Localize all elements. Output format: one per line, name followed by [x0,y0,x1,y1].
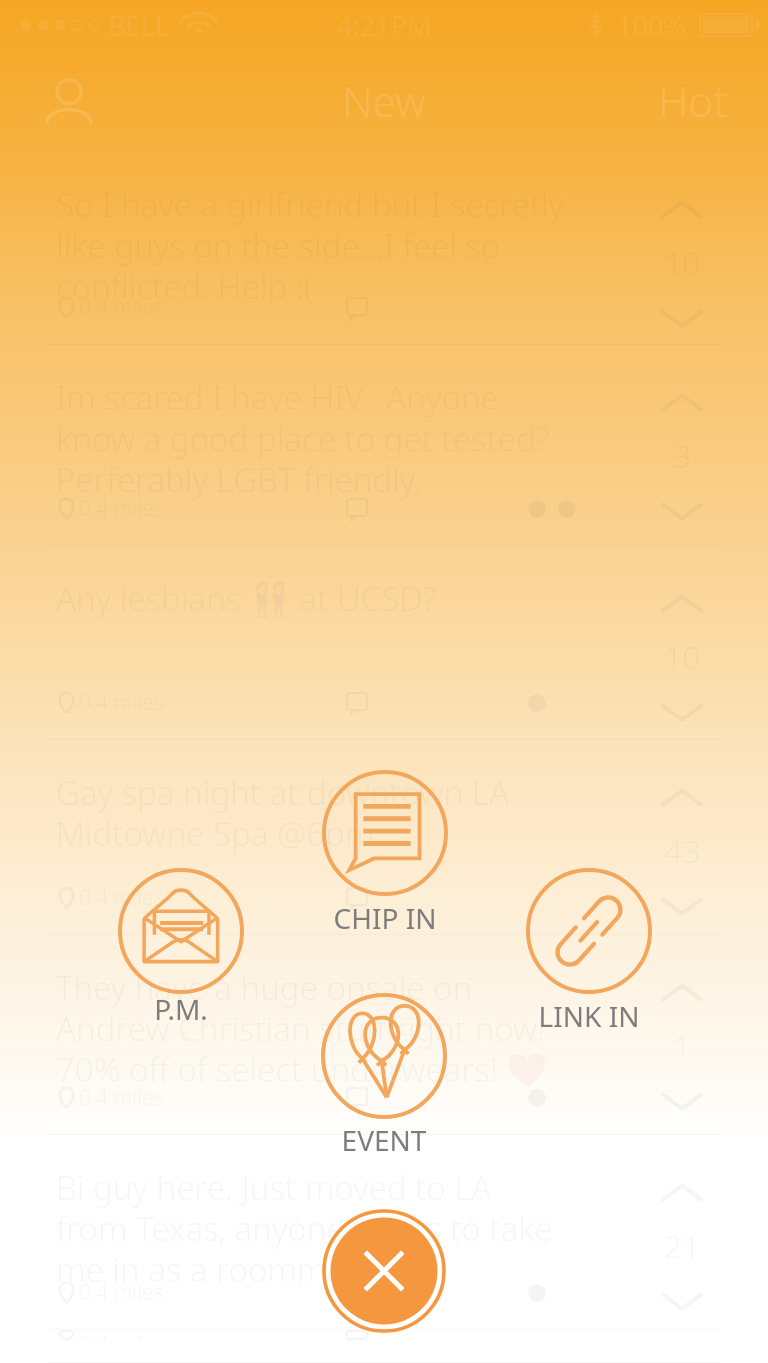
staticText: Im scared I have HIV…Anyone know a good … [56,375,565,501]
staticText: LINK IN [509,997,669,1035]
button[interactable]: Close menu [322,1209,446,1333]
button[interactable]: EVENT [304,993,464,1161]
button[interactable]: So I have a girlfriend but I secretly li… [0,152,768,345]
staticText: 10 [664,241,701,285]
staticText: CHIP IN [305,899,465,937]
staticText: Bi guy here. Just moved to LA from Texas… [56,1165,565,1291]
button[interactable]: Bi guy here. Just moved to LA from Texas… [0,1135,768,1330]
staticText: EVENT [304,1121,464,1159]
button[interactable]: CHIP IN [305,770,465,939]
button[interactable]: New [342,72,426,129]
staticText: They have a huge onsale on Andrew Christ… [56,965,565,1092]
staticText: Gay spa night at downtown LA Midtowne Sp… [56,770,565,855]
button[interactable]: Gay spa night at downtown LA Midtowne Sp… [0,740,768,935]
staticText: So I have a girlfriend but I secretly li… [56,182,565,308]
button[interactable]: LINK IN [509,868,669,1037]
staticText: New [342,72,426,129]
button[interactable]: Has anyone been to the new gay bar in we… [0,1330,768,1363]
staticText: P.M. [101,990,261,1028]
staticText: 100% [617,7,686,44]
button[interactable]: Profile [46,77,92,123]
staticText: 0.4 miles [79,883,164,912]
staticText: BELL [108,7,169,44]
button[interactable]: P.M. [101,868,261,1030]
button[interactable]: Hot [658,72,728,129]
staticText: 4:21PM [337,7,432,44]
button[interactable]: They have a huge onsale on Andrew Christ… [0,935,768,1135]
staticText: Any lesbians 👭 at UCSD? [56,576,437,621]
button[interactable]: Im scared I have HIV…Anyone know a good … [0,345,768,546]
button[interactable]: Any lesbians 👭 at UCSD? [0,546,768,740]
staticText: Hot [658,72,728,129]
